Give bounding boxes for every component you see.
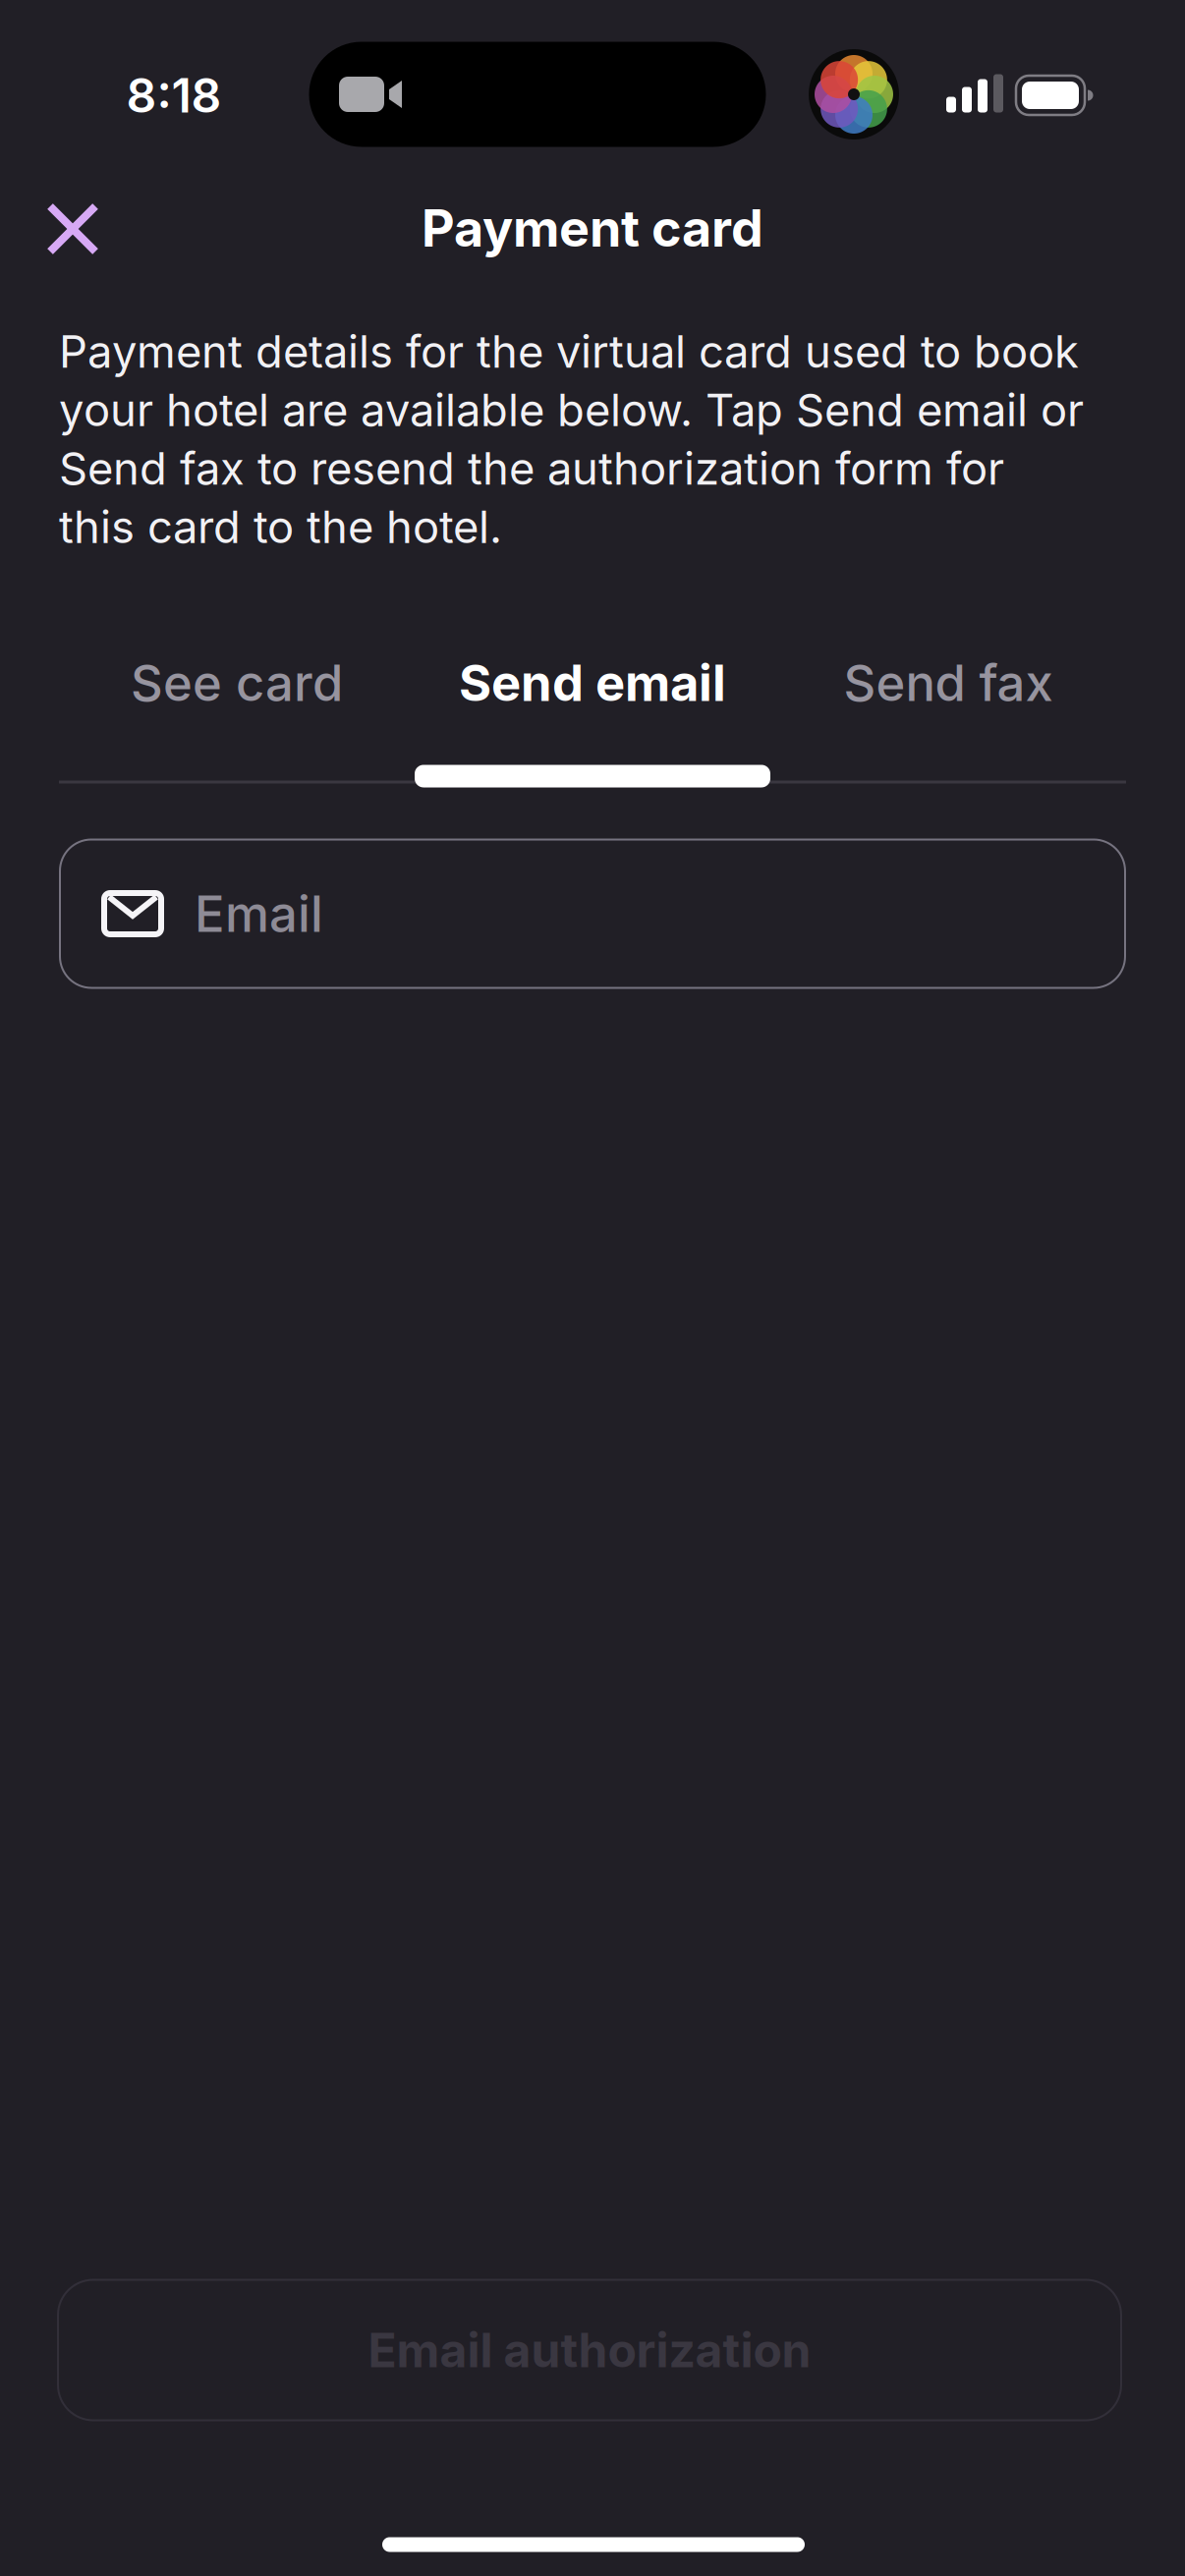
button[interactable]: Email authorization — [58, 2280, 1121, 2420]
staticText: Email — [195, 884, 323, 943]
staticText: your hotel are available below. Tap Send… — [59, 384, 1084, 436]
staticText: 8:18 — [126, 67, 222, 123]
staticText: Payment details for the virtual card use… — [59, 325, 1079, 378]
button[interactable]: Send email — [415, 639, 770, 727]
button[interactable]: Send fax — [770, 639, 1126, 727]
button[interactable]: Email — [60, 840, 1125, 988]
staticText: Send fax — [844, 653, 1053, 712]
button[interactable]: Close — [32, 189, 113, 269]
button[interactable]: See card — [59, 639, 415, 727]
staticText: this card to the hotel. — [59, 501, 502, 553]
staticText: See card — [131, 653, 343, 712]
staticText: Payment card — [422, 198, 763, 258]
staticText: Email authorization — [368, 2322, 811, 2378]
staticText: Send fax to resend the authorization for… — [59, 442, 1004, 495]
staticText: Send email — [459, 653, 726, 712]
